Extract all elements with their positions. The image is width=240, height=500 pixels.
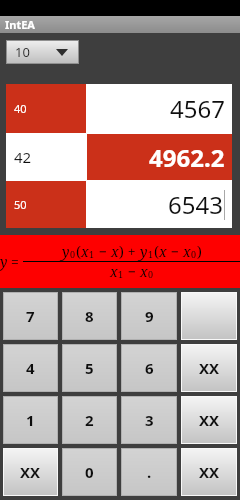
button[interactable]: 0	[63, 449, 116, 495]
staticText: (	[76, 242, 81, 261]
button[interactable]: 4	[4, 345, 57, 391]
staticText: 1	[118, 268, 124, 280]
staticText: −	[124, 262, 140, 281]
staticText: y	[140, 242, 148, 261]
staticText: y	[62, 242, 70, 261]
staticText: x	[140, 262, 148, 281]
button[interactable]: 5	[63, 345, 116, 391]
staticText: 4962.2	[149, 141, 225, 174]
staticText: 4567	[170, 92, 225, 125]
staticText: 4	[26, 358, 35, 378]
button[interactable]: .	[122, 449, 176, 495]
staticText: 0	[148, 268, 154, 280]
staticText: y =	[0, 252, 19, 271]
staticText: 50	[14, 197, 27, 212]
staticText: 9	[145, 306, 154, 326]
staticText: )	[119, 242, 124, 261]
staticText: +	[124, 242, 140, 261]
button[interactable]: 3	[122, 397, 176, 443]
staticText: x	[183, 242, 191, 261]
button[interactable]: XX	[182, 345, 236, 391]
staticText: 10	[15, 43, 30, 61]
staticText: XX	[199, 358, 220, 378]
staticText: 1	[26, 410, 35, 430]
button[interactable]: 10	[7, 41, 78, 63]
staticText: XX	[199, 410, 220, 430]
staticText: 1	[89, 248, 95, 260]
button[interactable]: 9	[122, 293, 176, 339]
staticText: 1	[148, 248, 154, 260]
button[interactable]: 6	[122, 345, 176, 391]
staticText: 2	[85, 410, 94, 430]
button[interactable]: 6543	[87, 181, 232, 228]
staticText: −	[167, 242, 183, 261]
button[interactable]: 7	[4, 293, 57, 339]
staticText: 40	[14, 101, 27, 116]
staticText: 0	[191, 248, 197, 260]
button[interactable]: 4567	[87, 84, 232, 133]
button[interactable]: XX	[4, 449, 57, 495]
button[interactable]: 2	[63, 397, 116, 443]
staticText: 8	[85, 306, 94, 326]
staticText: x	[159, 242, 167, 261]
staticText: .	[147, 462, 152, 482]
staticText: 3	[145, 410, 154, 430]
button[interactable]: Blank key	[182, 293, 236, 339]
staticText: x	[81, 242, 89, 261]
button[interactable]: 50	[6, 181, 86, 228]
staticText: 5	[85, 358, 94, 378]
button[interactable]: 4962.2	[87, 134, 232, 180]
staticText: 6	[145, 358, 154, 378]
staticText: 0	[70, 248, 76, 260]
button[interactable]: XX	[182, 397, 236, 443]
button[interactable]: 1	[4, 397, 57, 443]
button[interactable]: XX	[182, 449, 236, 495]
staticText: )	[197, 242, 202, 261]
staticText: x	[110, 262, 118, 281]
button[interactable]: 8	[63, 293, 116, 339]
staticText: 0	[85, 462, 94, 482]
staticText: (	[154, 242, 159, 261]
staticText: 7	[26, 306, 35, 326]
staticText: XX	[199, 462, 220, 482]
staticText: IntEA	[5, 17, 35, 32]
staticText: x	[111, 242, 119, 261]
staticText: 42	[14, 147, 32, 167]
staticText: XX	[20, 462, 41, 482]
button[interactable]: 40	[6, 84, 86, 133]
button[interactable]: 42	[6, 134, 86, 180]
staticText: −	[95, 242, 111, 261]
staticText: 6543	[168, 188, 223, 221]
